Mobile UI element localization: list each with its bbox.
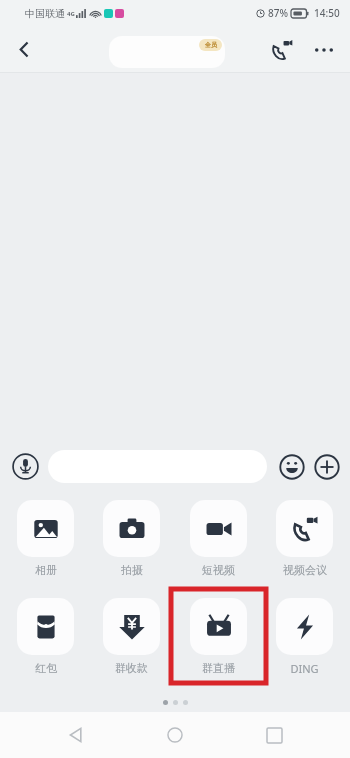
button[interactable]: DING	[276, 594, 333, 676]
staticText: 视频会议	[283, 563, 327, 577]
staticText: 14:50	[314, 6, 340, 20]
staticText: 4G	[67, 10, 75, 18]
button[interactable]	[48, 450, 267, 483]
button[interactable]: 拍摄	[103, 496, 160, 577]
button[interactable]: 群直播	[190, 594, 247, 675]
staticText: 拍摄	[121, 563, 143, 577]
staticText: 群直播	[202, 661, 235, 675]
button[interactable]: Add attachment	[311, 451, 342, 482]
staticText: 中国联通	[25, 7, 65, 20]
staticText: 87%	[268, 6, 288, 20]
button[interactable]: Back	[0, 26, 48, 73]
staticText: 短视频	[202, 563, 235, 577]
staticText: 全员	[205, 41, 217, 49]
staticText: 群收款	[115, 661, 148, 675]
button[interactable]: 视频会议	[276, 496, 333, 577]
button[interactable]: 群收款	[103, 594, 160, 675]
button[interactable]: Voice input	[8, 449, 42, 483]
staticText: 红包	[35, 661, 57, 675]
staticText: DING	[290, 661, 319, 676]
button[interactable]: Home	[152, 712, 198, 758]
button[interactable]: More options	[303, 29, 345, 71]
button[interactable]: Emoji	[276, 451, 307, 482]
staticText: 相册	[35, 563, 57, 577]
button[interactable]: 短视频	[190, 496, 247, 577]
button[interactable]: 红包	[17, 594, 74, 675]
button[interactable]: 相册	[17, 496, 74, 577]
button[interactable]: Recent apps	[251, 712, 297, 758]
button[interactable]: Video call	[261, 29, 303, 71]
button[interactable]: Back	[53, 712, 99, 758]
